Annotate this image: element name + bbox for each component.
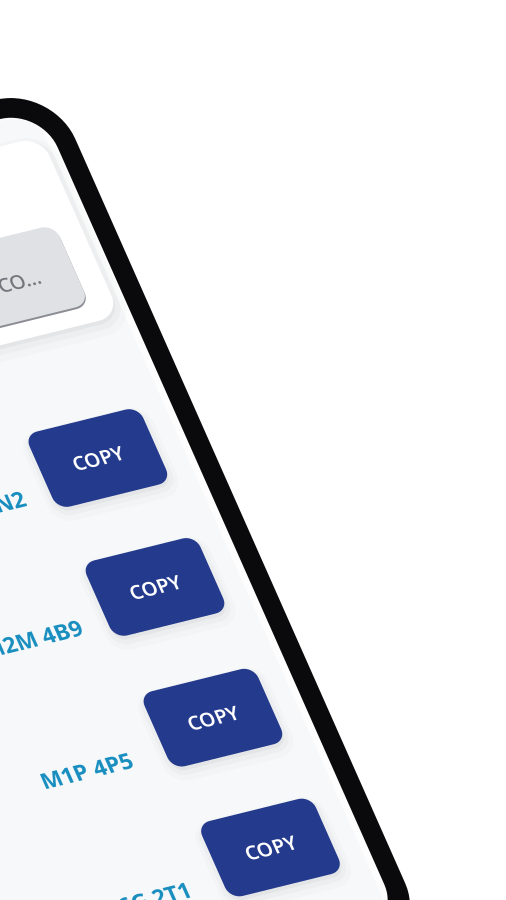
button[interactable]: SEARCH FOR A POSTAL CO… (0, 326, 12, 415)
